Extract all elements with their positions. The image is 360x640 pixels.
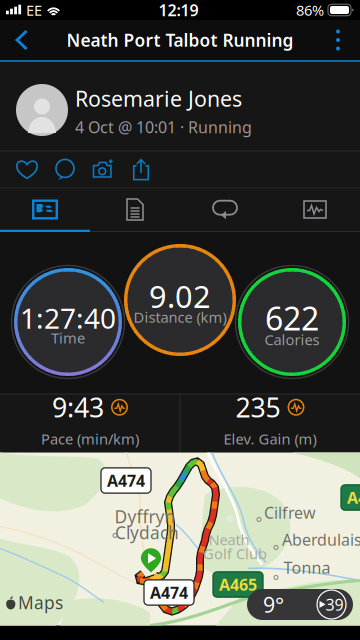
- staticText: Maps: [18, 591, 63, 614]
- button[interactable]: Charts: [270, 188, 360, 230]
- staticText: 86%: [296, 0, 324, 20]
- button[interactable]: Laps: [180, 188, 270, 230]
- button[interactable]: Add photo: [84, 151, 122, 188]
- staticText: A465: [219, 574, 257, 595]
- staticText: Pace (min/km): [41, 429, 139, 448]
- staticText: Distance (km): [133, 307, 226, 327]
- staticText: 39: [325, 594, 343, 615]
- button[interactable]: Splits: [90, 188, 180, 230]
- staticText: Golf Club: [203, 544, 267, 563]
- staticText: A474: [150, 582, 188, 603]
- button[interactable]: Share: [122, 151, 160, 188]
- staticText: 1:27:40: [20, 299, 116, 337]
- staticText: 622: [265, 297, 319, 339]
- button[interactable]: Weather 9 degrees: [247, 589, 353, 620]
- staticText: Time: [51, 328, 85, 348]
- staticText: 4 Oct @ 10:01 · Running: [75, 116, 252, 138]
- staticText: Rosemarie Jones: [75, 84, 242, 112]
- staticText: Dyffryn: [114, 505, 175, 528]
- staticText: 9°: [263, 590, 284, 619]
- staticText: Neath: [208, 530, 249, 549]
- staticText: Neath Port Talbot Running: [66, 28, 293, 51]
- staticText: Calories: [264, 330, 319, 349]
- button[interactable]: Comment: [46, 151, 84, 188]
- staticText: Clydach: [115, 521, 179, 544]
- staticText: Tonna: [283, 557, 330, 578]
- staticText: 235: [235, 390, 280, 425]
- staticText: 12:19: [158, 0, 198, 21]
- staticText: Elev. Gain (m): [223, 429, 316, 448]
- button[interactable]: Overview: [0, 188, 90, 230]
- button[interactable]: Like: [8, 151, 46, 188]
- staticText: EE: [26, 0, 42, 20]
- staticText: Cilfrew: [264, 502, 316, 523]
- staticText: Aberdulais: [282, 529, 360, 550]
- staticText: A474: [107, 470, 145, 491]
- staticText: 9:43: [52, 390, 104, 425]
- staticText: A4: [347, 487, 360, 508]
- button[interactable]: Back: [0, 20, 44, 60]
- staticText: 9.02: [149, 276, 211, 316]
- button[interactable]: More options: [316, 20, 360, 60]
